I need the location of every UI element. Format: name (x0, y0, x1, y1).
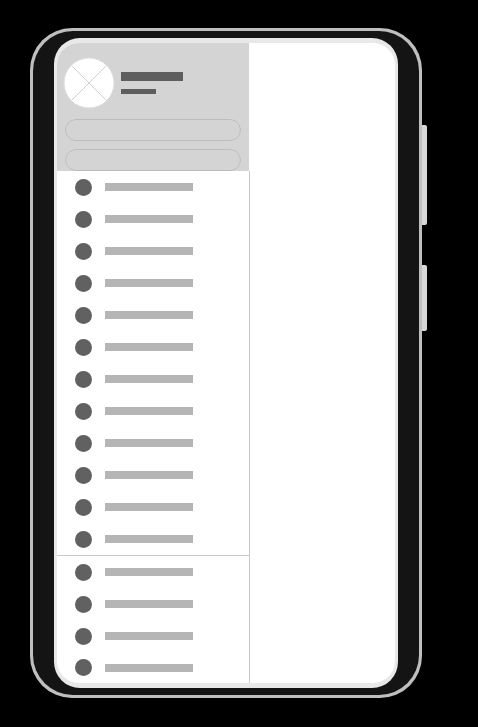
button[interactable] (65, 119, 241, 141)
button[interactable] (57, 171, 249, 203)
button[interactable] (57, 363, 249, 395)
button[interactable]: Profile picture (64, 58, 114, 108)
button[interactable] (57, 331, 249, 363)
button[interactable] (57, 395, 249, 427)
button[interactable] (57, 652, 249, 683)
button[interactable] (57, 235, 249, 267)
button[interactable] (57, 459, 249, 491)
button[interactable] (57, 427, 249, 459)
button[interactable] (57, 203, 249, 235)
other: Power button (420, 265, 427, 331)
button[interactable] (57, 556, 249, 588)
button[interactable] (57, 588, 249, 620)
button[interactable] (57, 620, 249, 652)
button[interactable] (57, 523, 249, 555)
button[interactable] (57, 299, 249, 331)
button[interactable] (57, 267, 249, 299)
button[interactable] (65, 149, 241, 171)
other: Volume buttons (420, 125, 427, 225)
button[interactable] (57, 491, 249, 523)
